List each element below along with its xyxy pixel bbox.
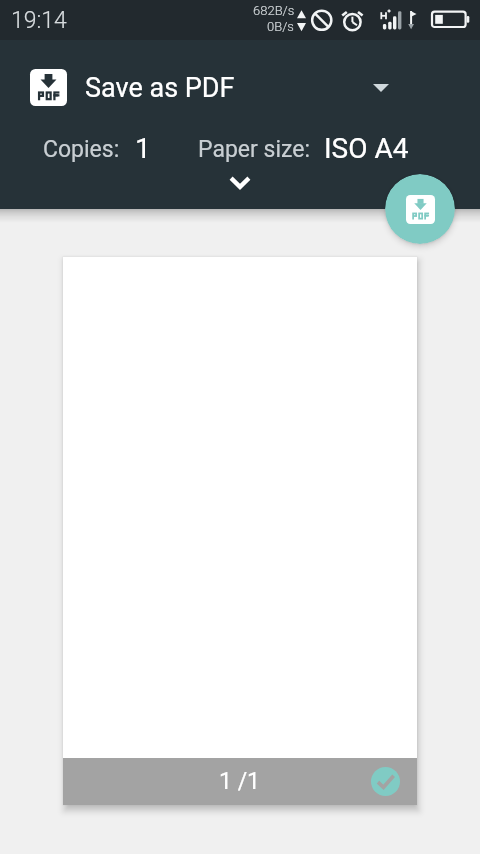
- staticText: Copies:: [43, 136, 120, 163]
- staticText: Save as PDF: [85, 72, 235, 104]
- staticText: 682B/s: [253, 3, 295, 18]
- staticText: 1: [135, 132, 151, 165]
- button[interactable]: 1 /1: [63, 257, 417, 805]
- staticText: Paper size:: [198, 136, 310, 163]
- button[interactable]: Save as PDF: [385, 174, 455, 244]
- button[interactable]: Page selected: [371, 767, 400, 796]
- button[interactable]: Expand print options: [0, 166, 480, 198]
- staticText: ISO A4: [324, 132, 409, 165]
- staticText: 0B/s: [267, 19, 294, 34]
- staticText: 1 /1: [219, 768, 261, 795]
- staticText: 19:14: [11, 7, 67, 34]
- button[interactable]: Save as PDF: [0, 40, 480, 128]
